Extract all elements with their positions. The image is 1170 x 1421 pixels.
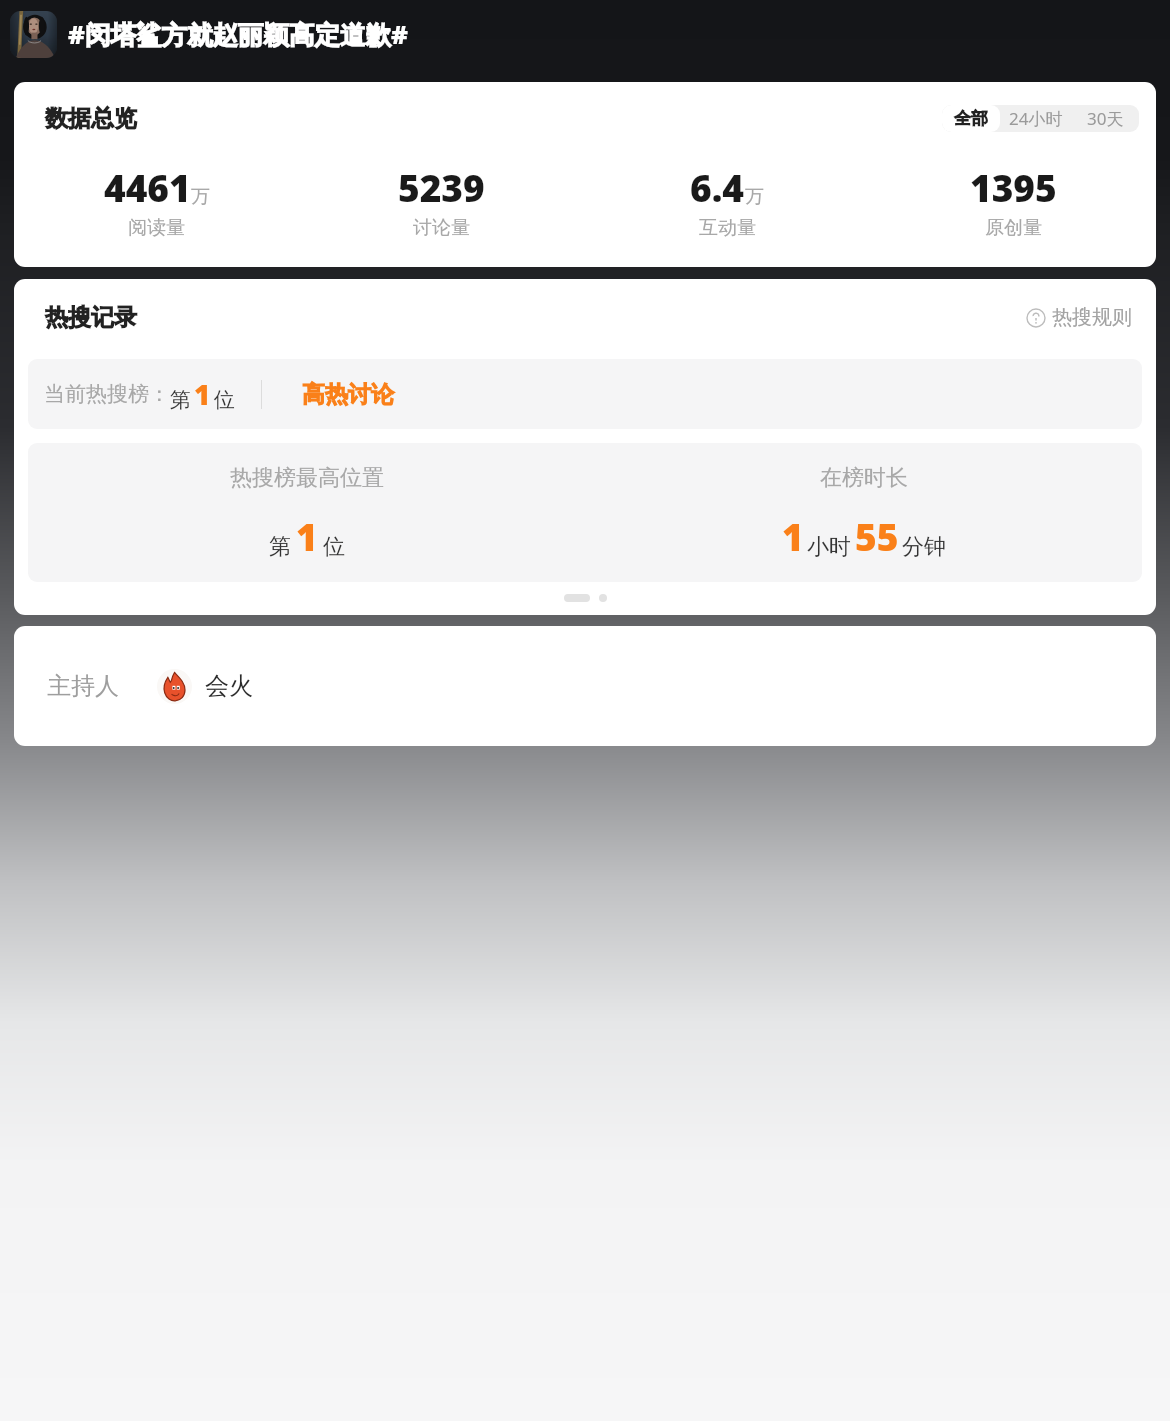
staticText: 万 xyxy=(745,185,764,209)
staticText: 万 xyxy=(191,185,210,209)
staticText: 全部 xyxy=(954,108,988,129)
button[interactable]: 30天 xyxy=(1072,105,1139,132)
staticText: 6.4 xyxy=(690,162,745,212)
staticText: 5239 xyxy=(398,162,485,212)
staticText: 热搜记录 xyxy=(45,303,137,332)
staticText: 在榜时长 xyxy=(820,464,908,492)
staticText: 分钟 xyxy=(902,533,946,561)
staticText: 第 xyxy=(170,387,191,413)
staticText: 位 xyxy=(323,533,345,561)
staticText: 原创量 xyxy=(985,216,1042,240)
button[interactable]: 24小时 xyxy=(1000,105,1072,132)
button[interactable]: #闵塔鲨方就赵丽颖高定道歉# xyxy=(0,0,1170,68)
staticText: 30天 xyxy=(1087,107,1124,130)
other: 热搜规则说明 xyxy=(1026,308,1046,328)
staticText: 高热讨论 xyxy=(302,380,394,409)
staticText: 热搜规则 xyxy=(1052,305,1132,330)
button[interactable]: 1395 xyxy=(870,162,1156,240)
staticText: 1 xyxy=(194,375,211,413)
staticText: 讨论量 xyxy=(413,216,470,240)
staticText: 会火 xyxy=(205,671,253,701)
staticText: 24小时 xyxy=(1009,107,1063,130)
staticText: 数据总览 xyxy=(45,104,137,133)
staticText: 1 xyxy=(296,511,318,561)
staticText: 主持人 xyxy=(47,671,119,701)
button[interactable]: 热搜规则说明 xyxy=(1026,305,1132,330)
staticText: 1 xyxy=(782,511,804,561)
staticText: 小时 xyxy=(807,533,851,561)
staticText: 热搜榜最高位置 xyxy=(230,464,384,492)
button[interactable]: 5239 xyxy=(299,162,584,240)
button[interactable]: 当前热搜榜： xyxy=(28,359,1142,429)
button[interactable]: 热搜榜最高位置 xyxy=(28,443,1142,582)
staticText: 第 xyxy=(269,533,291,561)
staticText: 互动量 xyxy=(699,216,756,240)
button[interactable]: 全部 xyxy=(942,105,1000,132)
staticText: 4461 xyxy=(104,162,191,212)
staticText: 当前热搜榜： xyxy=(44,381,170,407)
staticText: 阅读量 xyxy=(128,216,185,240)
button[interactable]: 6.4 xyxy=(584,162,870,240)
button[interactable]: 主持人 xyxy=(14,626,1156,746)
staticText: 55 xyxy=(855,511,899,561)
button[interactable]: 4461 xyxy=(14,162,299,240)
staticText: #闵塔鲨方就赵丽颖高定道歉# xyxy=(68,17,408,52)
staticText: 位 xyxy=(214,387,235,413)
staticText: 1395 xyxy=(970,162,1057,212)
